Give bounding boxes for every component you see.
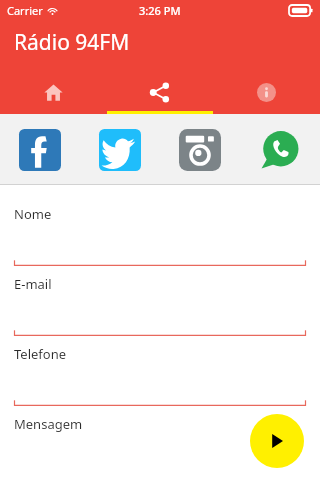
staticText: 3:26 PM [139,3,181,18]
staticText: Carrier [7,3,43,18]
button[interactable]: Info [213,70,320,114]
button[interactable]: Home [0,70,106,114]
button[interactable]: Facebook [0,114,80,185]
button[interactable]: Nome [14,205,320,227]
button[interactable]: WhatsApp [240,114,320,185]
staticText: Rádio 94FM [14,28,130,57]
button[interactable]: Twitter [80,114,160,185]
button[interactable]: Instagram [160,114,240,185]
button[interactable]: Share [106,70,213,114]
staticText: Nome [14,205,52,223]
staticText: Telefone [14,345,67,363]
staticText: Mensagem [14,415,83,433]
button[interactable]: Play [250,414,304,468]
button[interactable]: E-mail [14,275,320,297]
button[interactable]: Telefone [14,345,320,367]
staticText: E-mail [14,275,52,293]
button[interactable]: Mensagem [14,415,320,437]
